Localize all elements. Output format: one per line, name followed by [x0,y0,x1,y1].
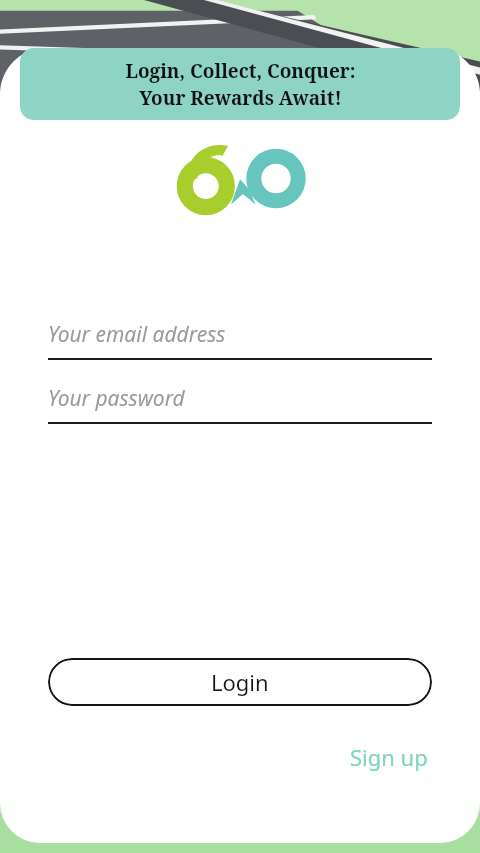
staticText: Your email address [48,320,226,349]
staticText: Sign up [350,742,428,772]
button[interactable]: Your password [48,374,432,424]
button[interactable]: Your email address [48,310,432,360]
staticText: Login, Collect, Conquer: Your Rewards Aw… [125,58,356,111]
staticText: Your password [48,384,185,413]
staticText: Login [211,667,269,697]
button[interactable]: Sign up [346,738,432,776]
button[interactable]: Login [48,658,432,706]
